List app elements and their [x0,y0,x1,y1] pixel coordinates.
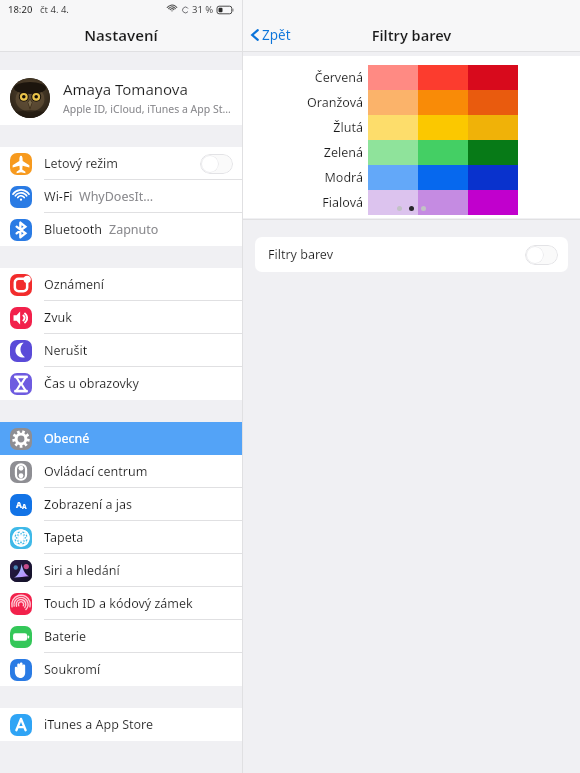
staticText: A [22,502,27,511]
button[interactable]: A [0,488,242,521]
staticText: Letový režim [44,155,119,172]
staticText: Touch ID a kódový zámek [44,595,193,612]
button[interactable]: Siri a hledání [0,554,242,587]
button[interactable]: Wi-Fi [0,180,242,213]
button[interactable]: iTunes a App Store [0,708,242,741]
button[interactable]: Oznámení [0,268,242,301]
button[interactable]: Tapeta [0,521,242,554]
staticText: Nerušit [44,342,88,359]
button[interactable]: Čas u obrazovky [0,367,242,400]
staticText: Zobrazení a jas [44,496,132,513]
staticText: Filtry barev [243,25,580,45]
button[interactable]: Filtry barev [255,237,568,272]
staticText: Zvuk [44,309,72,326]
staticText: Čas u obrazovky [44,375,139,392]
staticText: Apple ID, iCloud, iTunes a App St… [63,102,231,116]
staticText: Fialová [322,194,363,211]
staticText: Modrá [324,169,363,186]
button[interactable]: Color filter preview [368,65,518,215]
staticText: Baterie [44,628,87,645]
staticText: WhyDoesItHurtWhenIP_… [79,188,156,205]
staticText: Zapnuto [109,221,159,238]
staticText: čt 4. 4. [40,3,69,16]
staticText: Wi-Fi [44,188,73,205]
staticText: Filtry barev [268,246,334,263]
staticText: A [16,499,22,511]
staticText: Zelená [323,144,363,161]
staticText: Oznámení [44,276,105,293]
staticText: Červená [314,69,363,86]
button[interactable]: Amaya Tomanova [0,70,242,125]
button[interactable]: Ovládací centrum [0,455,242,488]
staticText: Soukromí [44,661,101,678]
button[interactable]: Zpět [250,26,291,44]
staticText: Siri a hledání [44,562,120,579]
button[interactable]: Toggle off [200,154,233,174]
button[interactable]: Baterie [0,620,242,653]
button[interactable]: Nerušit [0,334,242,367]
button[interactable]: Zvuk [0,301,242,334]
staticText: Amaya Tomanova [63,79,188,99]
staticText: Ovládací centrum [44,463,148,480]
staticText: Zpět [262,26,291,44]
button[interactable]: Touch ID a kódový zámek [0,587,242,620]
staticText: 31 % [192,3,214,16]
staticText: Bluetooth [44,221,103,238]
staticText: iTunes a App Store [44,716,154,733]
staticText: Oranžová [307,94,363,111]
button[interactable]: Soukromí [0,653,242,686]
button[interactable]: Obecné [0,422,242,455]
button[interactable]: Bluetooth [0,213,242,246]
button[interactable]: Toggle off [525,245,558,265]
staticText: Obecné [44,430,90,447]
staticText: Nastavení [0,25,242,45]
staticText: Žlutá [333,119,363,136]
button[interactable]: Letový režim [0,147,242,180]
staticText: 18:20 [8,3,33,16]
staticText: Tapeta [44,529,84,546]
